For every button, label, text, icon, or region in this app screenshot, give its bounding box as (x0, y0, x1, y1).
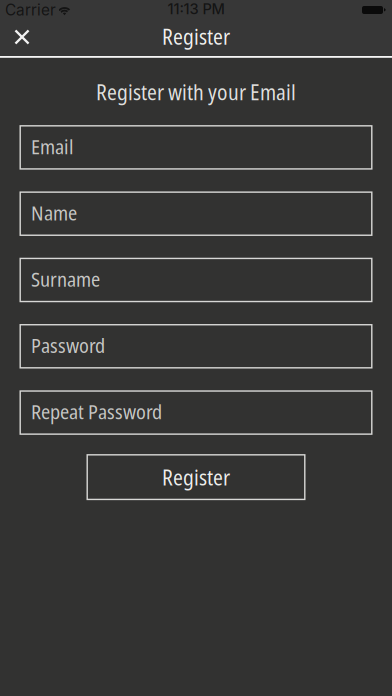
button[interactable]: Name (19, 191, 372, 236)
staticText: 11:13 PM (167, 0, 224, 18)
staticText: Surname (31, 266, 100, 292)
staticText: Email (31, 133, 73, 160)
staticText: Carrier (5, 1, 56, 19)
staticText: Password (31, 332, 105, 359)
staticText: Name (31, 199, 77, 226)
button[interactable]: Repeat Password (19, 390, 372, 435)
staticText: Register (162, 463, 230, 491)
button[interactable]: Surname (19, 258, 372, 302)
staticText: Register (162, 22, 230, 51)
staticText: Repeat Password (31, 398, 162, 425)
staticText: Register with your Email (96, 78, 296, 106)
button[interactable]: Register (86, 454, 305, 500)
button[interactable]: Password (19, 324, 372, 368)
button[interactable]: Close (0, 19, 44, 57)
button[interactable]: Email (19, 125, 372, 170)
